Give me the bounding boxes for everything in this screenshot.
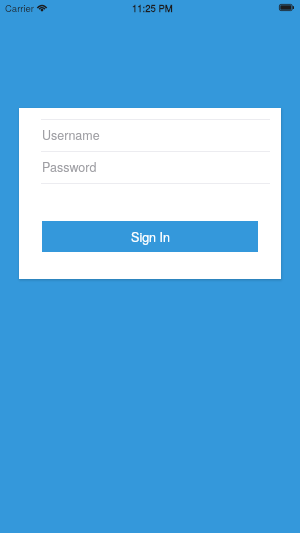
- staticText: Username: [42, 126, 100, 144]
- other: Wi-Fi signal: [37, 0, 47, 16]
- button[interactable]: Password: [41, 152, 270, 183]
- button[interactable]: Sign In: [42, 221, 258, 252]
- staticText: Sign In: [131, 228, 170, 246]
- button[interactable]: Username: [41, 120, 270, 151]
- staticText: Password: [42, 158, 97, 176]
- staticText: Carrier: [5, 1, 35, 15]
- other: Battery: [279, 4, 294, 11]
- staticText: 11:25 PM: [132, 1, 173, 15]
